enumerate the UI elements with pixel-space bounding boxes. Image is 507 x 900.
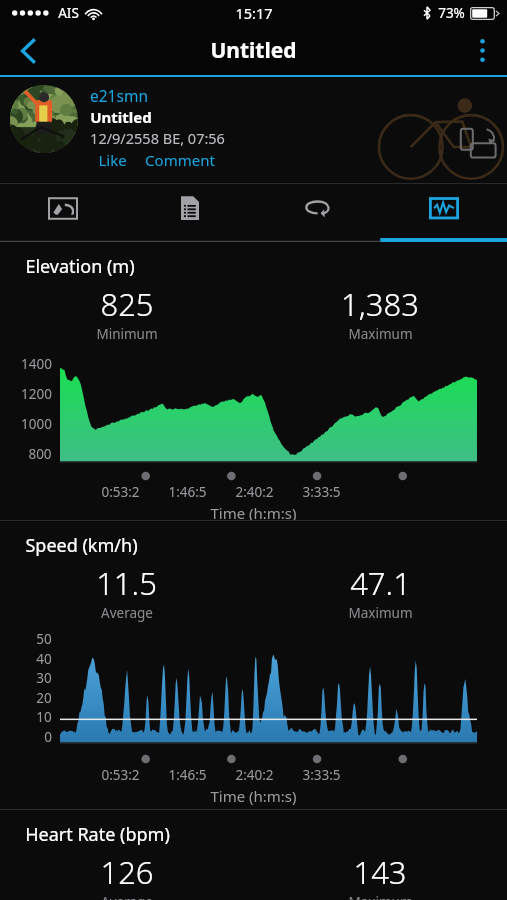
staticText: 1200 (21, 385, 52, 403)
staticText: Maximum (348, 604, 413, 622)
staticText: Maximum (348, 325, 413, 343)
staticText: 47.1 (350, 562, 411, 604)
staticText: 1000 (21, 415, 52, 433)
button[interactable] (10, 85, 78, 153)
staticText: Maximum (348, 893, 413, 900)
button[interactable]: e21smn (90, 85, 148, 106)
staticText: 15:17 (235, 3, 273, 23)
staticText: Heart Rate (bpm) (25, 822, 170, 847)
button[interactable]: Map (0, 184, 126, 242)
staticText: Untitled (90, 107, 152, 127)
staticText: 3:33:5 (302, 483, 341, 501)
staticText: 0 (44, 728, 52, 746)
button[interactable]: More options (457, 26, 507, 75)
staticText: 0:53:2 (101, 483, 140, 501)
staticText: 3:33:5 (302, 766, 341, 784)
button[interactable]: Rotate screen (449, 115, 507, 173)
staticText: 11.5 (96, 562, 157, 604)
button[interactable]: Details (126, 184, 253, 242)
staticText: 30 (36, 669, 52, 687)
staticText: Average (101, 893, 153, 900)
staticText: AIS (58, 4, 79, 22)
staticText: 143 (353, 851, 407, 893)
button[interactable]: Back (0, 26, 56, 75)
staticText: Untitled (210, 36, 297, 65)
staticText: 10 (36, 708, 52, 726)
staticText: 50 (36, 630, 52, 648)
staticText: 73% (438, 4, 465, 22)
staticText: 800 (28, 445, 52, 463)
staticText: 0:53:2 (101, 766, 140, 784)
staticText: 2:40:2 (235, 766, 274, 784)
staticText: 40 (36, 650, 52, 668)
staticText: Average (101, 604, 153, 622)
staticText: 1:46:5 (168, 766, 207, 784)
staticText: Time (h:m:s) (210, 503, 297, 523)
staticText: 20 (36, 689, 52, 707)
staticText: 825 (100, 283, 154, 325)
staticText: 1400 (21, 355, 52, 373)
staticText: 2:40:2 (235, 483, 274, 501)
staticText: 1,383 (341, 283, 419, 325)
button[interactable]: Laps (253, 184, 380, 242)
staticText: Speed (km/h) (25, 533, 138, 558)
staticText: 12/9/2558 BE, 07:56 (90, 128, 225, 148)
staticText: Time (h:m:s) (210, 786, 297, 806)
button[interactable]: Charts (380, 184, 507, 242)
button[interactable]: Comment (127, 150, 215, 170)
staticText: 1:46:5 (168, 483, 207, 501)
staticText: Elevation (m) (25, 254, 135, 279)
staticText: 126 (100, 851, 154, 893)
button[interactable]: Like (90, 150, 127, 170)
staticText: Minimum (96, 325, 158, 343)
